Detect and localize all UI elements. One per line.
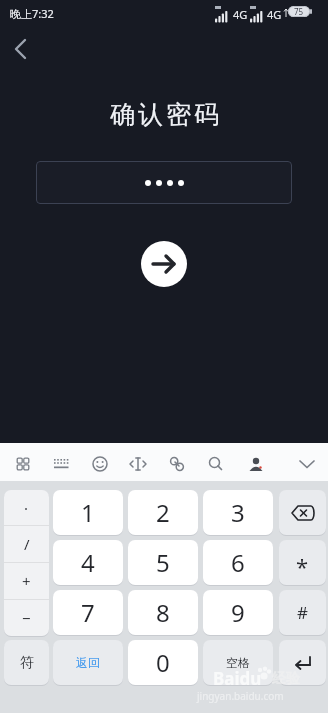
staticText: 晚上7:32 <box>10 6 54 21</box>
button[interactable]: · <box>4 490 49 525</box>
button[interactable]: 符 <box>4 640 49 685</box>
staticText: 2 <box>156 496 170 529</box>
button[interactable]: 8 <box>128 590 198 635</box>
button[interactable]: 3 <box>203 490 273 535</box>
button[interactable]: * <box>279 540 326 585</box>
button[interactable]: 9 <box>203 590 273 635</box>
staticText: 4G <box>267 7 282 22</box>
button[interactable]: 7 <box>53 590 123 635</box>
button[interactable]: 1 <box>53 490 123 535</box>
button[interactable]: 空格 <box>203 640 273 685</box>
button[interactable] <box>205 443 246 481</box>
button[interactable]: 5 <box>128 540 198 585</box>
staticText: 确认密码 <box>2 99 328 130</box>
button[interactable] <box>0 443 41 481</box>
staticText: 5 <box>156 546 170 579</box>
staticText: 4G <box>233 7 248 22</box>
button[interactable] <box>246 443 287 481</box>
staticText: 4 <box>81 546 95 579</box>
staticText: 0 <box>156 646 170 679</box>
button[interactable] <box>164 443 205 481</box>
staticText: 返回 <box>76 655 100 670</box>
button[interactable]: 返回 <box>53 640 123 685</box>
staticText: 8 <box>156 596 170 629</box>
button[interactable] <box>41 443 82 481</box>
button[interactable]: − <box>4 600 49 636</box>
staticText: 经验 <box>272 670 300 688</box>
staticText: 3 <box>231 496 245 529</box>
button[interactable] <box>141 241 187 287</box>
staticText: * <box>296 551 309 581</box>
button[interactable] <box>8 34 36 62</box>
staticText: Baidu <box>213 667 262 690</box>
staticText: 7 <box>81 596 95 629</box>
button[interactable] <box>279 640 326 685</box>
staticText: 75 <box>294 6 304 17</box>
staticText: 9 <box>231 596 245 629</box>
staticText: 空格 <box>226 655 250 670</box>
staticText: jingyan.baidu.com <box>197 689 284 703</box>
button[interactable] <box>279 490 326 535</box>
button[interactable]: 6 <box>203 540 273 585</box>
button[interactable]: + <box>4 563 49 599</box>
staticText: + <box>22 571 31 591</box>
staticText: # <box>297 601 308 624</box>
staticText: 6 <box>231 546 245 579</box>
button[interactable] <box>36 161 292 204</box>
button[interactable]: # <box>279 590 326 635</box>
staticText: · <box>24 498 29 518</box>
button[interactable]: / <box>4 526 49 562</box>
button[interactable] <box>287 443 328 481</box>
staticText: 1 <box>81 496 95 529</box>
button[interactable]: 4 <box>53 540 123 585</box>
button[interactable]: 2 <box>128 490 198 535</box>
button[interactable] <box>123 443 164 481</box>
staticText: − <box>22 608 31 628</box>
button[interactable]: 0 <box>128 640 198 685</box>
staticText: 符 <box>20 654 34 672</box>
button[interactable] <box>82 443 123 481</box>
staticText: / <box>24 534 30 554</box>
